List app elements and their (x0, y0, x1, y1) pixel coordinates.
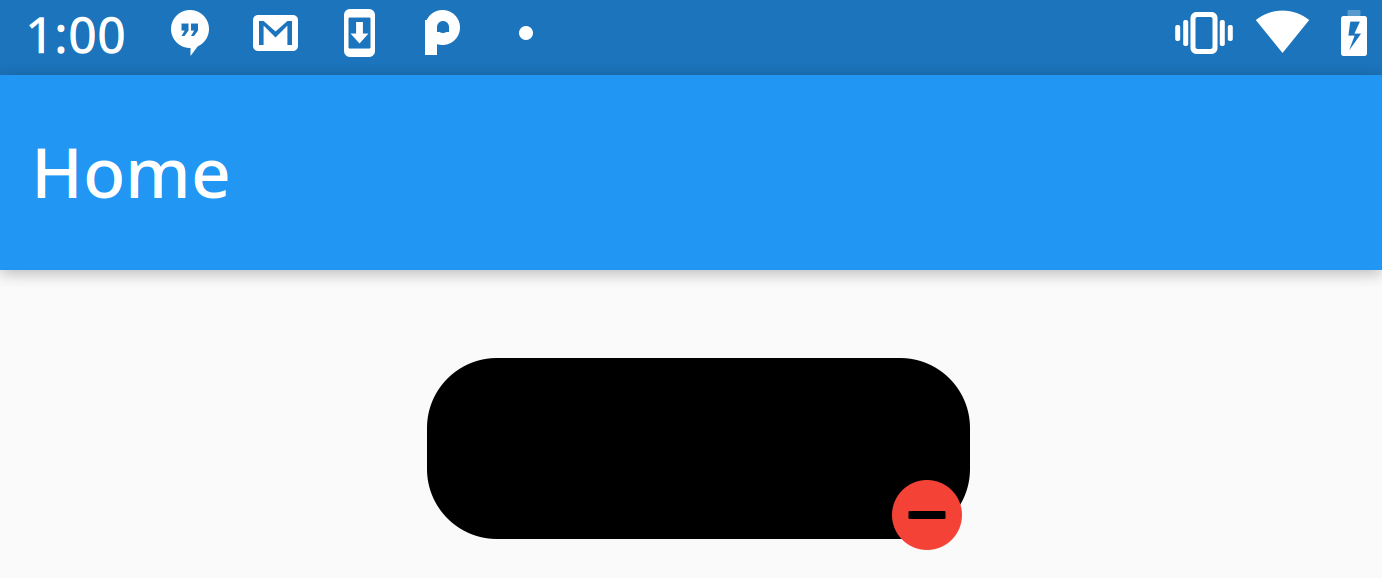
button[interactable]: Remove (892, 480, 962, 550)
staticText: 1:00 (25, 0, 126, 67)
staticText: Home (31, 125, 231, 217)
button[interactable]: Card (427, 358, 970, 539)
